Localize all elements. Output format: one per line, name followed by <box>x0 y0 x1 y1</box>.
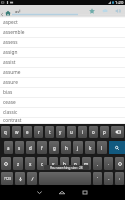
button[interactable]: z <box>13 157 23 170</box>
staticText: q <box>4 129 7 135</box>
button[interactable] <box>39 172 91 185</box>
staticText: j <box>77 145 79 151</box>
staticText: r <box>38 129 40 135</box>
staticText: t <box>49 129 51 135</box>
button[interactable]: assess <box>0 38 125 48</box>
staticText: ?123 <box>4 177 11 181</box>
button[interactable] <box>1 157 11 170</box>
button[interactable]: Cloud sync <box>98 5 111 16</box>
staticText: k <box>89 145 92 151</box>
staticText: a <box>7 145 10 151</box>
staticText: bias <box>3 89 13 96</box>
staticText: assist <box>3 59 16 66</box>
button[interactable]: t <box>45 126 54 138</box>
button[interactable]: b <box>60 157 69 170</box>
button[interactable]: k <box>85 141 95 154</box>
button[interactable]: g <box>49 141 59 154</box>
button[interactable]: l <box>97 141 107 154</box>
button[interactable]: x <box>25 157 35 170</box>
staticText: You searching size : 28 <box>50 166 83 170</box>
staticText: p <box>103 129 106 135</box>
button[interactable]: assist <box>0 58 125 68</box>
button[interactable]: f <box>37 141 47 154</box>
staticText: e <box>26 129 29 135</box>
button[interactable]: s <box>15 141 24 154</box>
button[interactable]: aspect <box>0 18 125 28</box>
staticText: w <box>15 129 19 135</box>
button[interactable] <box>15 172 25 185</box>
staticText: d <box>29 145 32 151</box>
staticText: : <box>119 176 121 181</box>
staticText: , <box>97 161 99 166</box>
staticText: h <box>65 145 68 151</box>
button[interactable] <box>115 157 124 170</box>
staticText: m <box>84 161 89 167</box>
button[interactable]: , <box>93 157 102 170</box>
button[interactable]: assemble <box>0 28 125 38</box>
button[interactable]: : <box>115 172 124 185</box>
staticText: assemble <box>3 29 25 36</box>
staticText: as <box>15 9 20 15</box>
button[interactable]: Home <box>3 7 13 18</box>
staticText: f <box>41 145 43 151</box>
button[interactable]: n <box>71 157 80 170</box>
button[interactable]: contrast <box>0 118 125 124</box>
staticText: o <box>92 129 95 135</box>
button[interactable]: o <box>89 126 98 138</box>
button[interactable]: h <box>61 141 71 154</box>
button[interactable]: u <box>67 126 76 138</box>
button[interactable]: ?123 <box>1 172 13 185</box>
staticText: assign <box>3 49 18 56</box>
button[interactable]: m <box>82 157 91 170</box>
staticText: assure <box>3 79 18 86</box>
staticText: contrast <box>3 117 22 123</box>
button[interactable]: ' <box>93 172 102 185</box>
button[interactable]: i <box>78 126 87 138</box>
button[interactable]: y <box>56 126 65 138</box>
staticText: l <box>101 145 103 151</box>
button[interactable]: as <box>12 5 78 15</box>
button[interactable]: - <box>104 172 113 185</box>
button[interactable]: r <box>34 126 43 138</box>
button[interactable] <box>27 172 37 185</box>
button[interactable]: cease <box>0 98 125 108</box>
button[interactable]: Hide keyboard <box>31 185 47 200</box>
staticText: - <box>108 176 110 181</box>
staticText: 1:20 <box>115 0 124 5</box>
button[interactable]: q <box>1 126 10 138</box>
staticText: classic <box>3 109 18 116</box>
staticText: . <box>108 161 110 166</box>
staticText: g <box>53 145 56 151</box>
staticText: z <box>17 161 20 167</box>
button[interactable] <box>109 141 125 154</box>
staticText: ' <box>97 176 98 181</box>
button[interactable]: Back <box>0 10 4 18</box>
button[interactable]: d <box>26 141 35 154</box>
button[interactable]: e <box>23 126 32 138</box>
button[interactable]: Pronounce <box>111 5 124 16</box>
button[interactable]: j <box>73 141 83 154</box>
button[interactable]: Recent apps <box>77 185 93 200</box>
button[interactable]: p <box>100 126 109 138</box>
button[interactable]: classic <box>0 108 125 118</box>
button[interactable]: assume <box>0 68 125 78</box>
button[interactable]: a <box>4 141 13 154</box>
button[interactable]: w <box>12 126 21 138</box>
button[interactable]: bias <box>0 88 125 98</box>
button[interactable]: c <box>37 157 47 170</box>
button[interactable]: assure <box>0 78 125 88</box>
button[interactable] <box>111 126 124 138</box>
staticText: aspect <box>3 19 18 26</box>
staticText: i <box>82 129 84 135</box>
staticText: u <box>70 129 73 135</box>
button[interactable]: v <box>49 157 58 170</box>
staticText: assume <box>3 69 21 76</box>
staticText: cease <box>3 99 16 106</box>
button[interactable]: assign <box>0 48 125 58</box>
staticText: x <box>29 161 32 167</box>
staticText: b <box>63 161 66 167</box>
button[interactable]: Favorite <box>85 5 98 16</box>
button[interactable]: . <box>104 157 113 170</box>
staticText: y <box>59 129 62 135</box>
button[interactable]: Home <box>54 185 70 200</box>
